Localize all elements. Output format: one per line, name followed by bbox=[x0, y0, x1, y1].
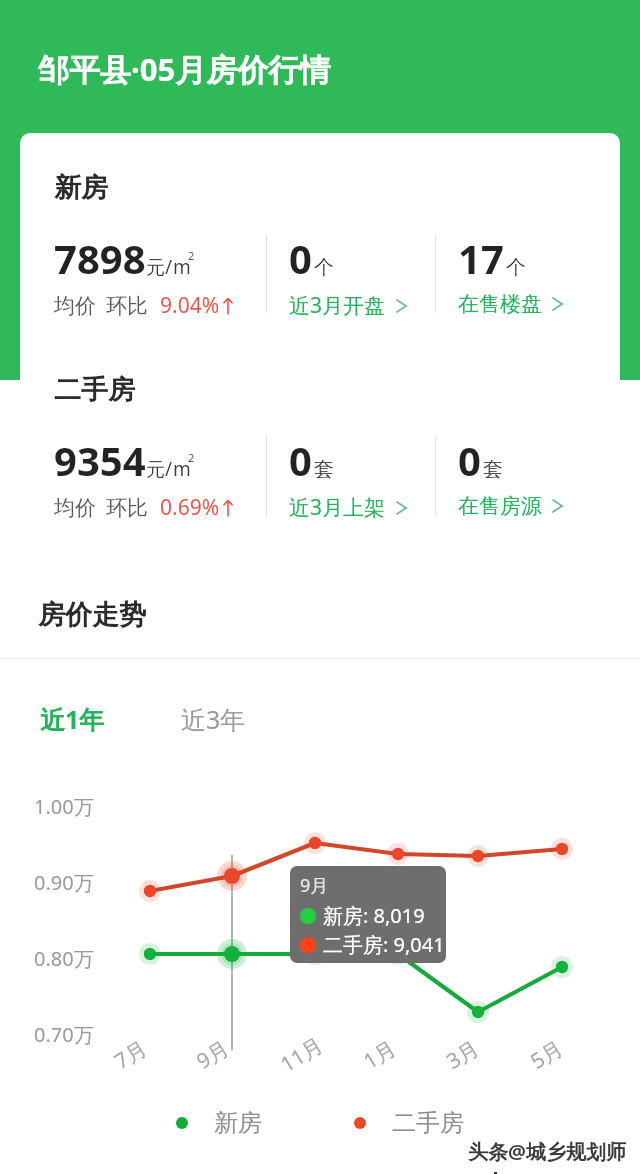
button[interactable]: 近3年 bbox=[177, 696, 250, 742]
staticText: 0 bbox=[458, 433, 481, 487]
staticText: 近3月上架 bbox=[289, 493, 386, 522]
staticText: 环比 bbox=[106, 293, 148, 319]
staticText: 新房 bbox=[54, 171, 108, 205]
staticText: 头条@城乡规划师qal bbox=[468, 1138, 640, 1174]
staticText: 0 bbox=[289, 433, 312, 487]
staticText: 9.04% bbox=[160, 291, 220, 320]
staticText: 7898 bbox=[54, 231, 146, 285]
staticText: 环比 bbox=[106, 495, 148, 521]
staticText: 5月 bbox=[525, 1033, 569, 1076]
staticText: 近1年 bbox=[40, 702, 105, 736]
staticText: 新房 bbox=[214, 1108, 262, 1138]
staticText: 0.90万 bbox=[34, 869, 94, 896]
staticText: 二手房 bbox=[392, 1108, 464, 1138]
staticText: 2 bbox=[188, 450, 195, 465]
button[interactable]: 0 bbox=[267, 231, 435, 327]
staticText: 个 bbox=[506, 255, 526, 280]
staticText: 2 bbox=[188, 248, 195, 263]
button[interactable]: 近1年 bbox=[36, 696, 109, 742]
staticText: 房价走势 bbox=[38, 598, 146, 632]
staticText: 元/ bbox=[146, 456, 173, 482]
staticText: 9月 bbox=[300, 873, 329, 898]
staticText: 9354 bbox=[54, 433, 146, 487]
button[interactable]: 0 bbox=[436, 433, 604, 529]
staticText: 0.69% bbox=[160, 493, 220, 522]
staticText: 元/ bbox=[146, 254, 173, 280]
staticText: 个 bbox=[314, 255, 334, 280]
staticText: m bbox=[173, 254, 191, 280]
staticText: 9月 bbox=[191, 1033, 235, 1076]
staticText: 0.70万 bbox=[34, 1021, 94, 1048]
staticText: 邹平县·05月房价行情 bbox=[38, 48, 331, 90]
staticText: 17 bbox=[458, 231, 504, 285]
staticText: 0.80万 bbox=[34, 945, 94, 972]
staticText: 7月 bbox=[109, 1033, 153, 1076]
staticText: 3月 bbox=[441, 1033, 485, 1076]
staticText: 在售房源 bbox=[458, 493, 542, 519]
staticText: 二手房: 9,041 bbox=[323, 931, 445, 958]
staticText: 新房: 8,019 bbox=[323, 902, 425, 929]
staticText: 二手房 bbox=[54, 373, 135, 407]
staticText: 1.00万 bbox=[34, 793, 94, 820]
staticText: 在售楼盘 bbox=[458, 291, 542, 317]
staticText: 均价 bbox=[54, 495, 96, 521]
staticText: 近3年 bbox=[181, 702, 246, 736]
staticText: 均价 bbox=[54, 293, 96, 319]
staticText: 11月 bbox=[275, 1030, 329, 1079]
staticText: 套 bbox=[483, 457, 503, 482]
button[interactable]: 17 bbox=[436, 231, 604, 327]
staticText: 近3月开盘 bbox=[289, 291, 386, 320]
staticText: 0 bbox=[289, 231, 312, 285]
button[interactable]: 0 bbox=[267, 433, 435, 529]
staticText: 1月 bbox=[358, 1033, 402, 1076]
staticText: 套 bbox=[314, 457, 334, 482]
staticText: m bbox=[173, 456, 191, 482]
